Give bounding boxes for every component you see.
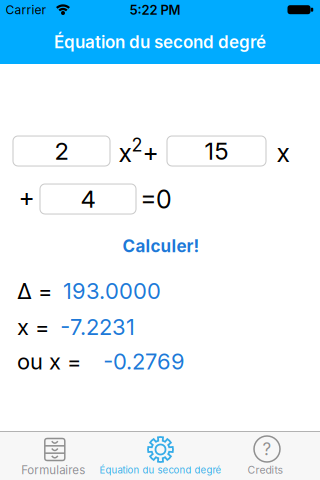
staticText: =0 <box>140 184 172 215</box>
button[interactable]: Équation du second degré <box>98 431 222 480</box>
button[interactable]: Formulaires <box>0 431 106 480</box>
staticText: ou x = <box>17 348 81 375</box>
staticText: ? <box>262 439 271 459</box>
staticText: 5:22 PM <box>129 2 180 18</box>
staticText: Carrier <box>5 3 46 17</box>
button[interactable]: ? <box>212 431 318 480</box>
staticText: 15 <box>204 136 228 165</box>
staticText: x2+ <box>118 134 158 168</box>
staticText: 4 <box>80 184 95 213</box>
staticText: -0.2769 <box>103 348 185 375</box>
staticText: 193.0000 <box>63 278 161 304</box>
button[interactable]: Coefficient 2 <box>13 136 110 166</box>
staticText: Équation du second degré <box>99 464 221 476</box>
staticText: -7.2231 <box>60 314 135 340</box>
staticText: Calculer! <box>122 236 199 256</box>
button[interactable]: Calculer! <box>122 236 199 256</box>
staticText: Équation du second degré <box>54 32 266 52</box>
staticText: Δ = <box>17 278 52 304</box>
staticText: x <box>276 138 289 168</box>
staticText: x = <box>17 314 49 340</box>
button[interactable]: Coefficient 4 <box>40 184 136 214</box>
staticText: Formulaires <box>21 463 85 477</box>
staticText: 2 <box>54 136 68 165</box>
staticText: Credits <box>247 464 283 476</box>
button[interactable]: Coefficient 15 <box>167 136 266 166</box>
staticText: + <box>18 183 34 213</box>
